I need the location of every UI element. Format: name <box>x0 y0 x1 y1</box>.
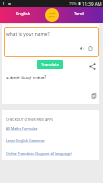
staticText: உங்கள் பெயர் என்ன? <box>6 74 47 80</box>
staticText: Tamil <box>74 11 85 17</box>
staticText: English <box>16 11 31 17</box>
button[interactable]: what is your name? <box>4 27 99 57</box>
staticText: CHECKOUT OTHER FREE APPS <box>6 117 54 122</box>
button[interactable]: Swap languages <box>45 8 59 22</box>
staticText: Learn English Grammar <box>6 138 45 143</box>
button[interactable]: Translate <box>37 60 63 69</box>
button[interactable]: Learn English Grammar <box>6 138 45 143</box>
button[interactable]: All Maths Formulas <box>6 126 38 131</box>
staticText: what is your name? <box>6 31 50 38</box>
button[interactable]: English <box>0 7 47 23</box>
button[interactable]: Tamil <box>56 7 103 23</box>
staticText: Translate <box>41 62 60 68</box>
staticText: 79% <box>69 1 77 6</box>
button[interactable]: உங்கள் பெயர் என்ன? <box>2 72 99 104</box>
button[interactable]: Copy text <box>85 43 95 53</box>
staticText: 11:39 AM <box>82 1 102 7</box>
button[interactable]: Copy translation <box>88 90 99 101</box>
button[interactable]: Online Translator (Support all language) <box>6 151 72 156</box>
staticText: Online Translator (Support all language) <box>6 151 72 156</box>
button[interactable]: Listen <box>76 43 86 53</box>
staticText: All Maths Formulas <box>6 126 38 131</box>
button[interactable]: Share <box>87 61 97 71</box>
